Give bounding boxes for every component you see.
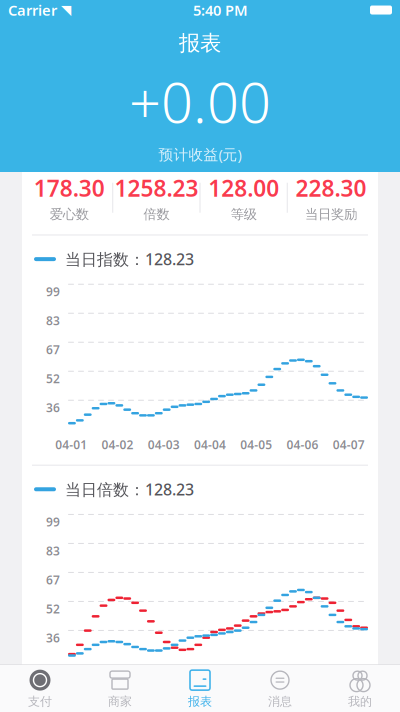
- staticText: 04-05: [240, 437, 272, 453]
- staticText: 支付: [28, 694, 52, 709]
- staticText: 我的: [348, 694, 372, 709]
- staticText: 04-02: [101, 667, 133, 683]
- staticText: 当日倍数：128.23: [65, 479, 194, 500]
- staticText: 52: [46, 601, 60, 617]
- staticText: 36: [46, 400, 60, 416]
- staticText: 228.30: [295, 173, 366, 203]
- button[interactable]: 报表: [160, 663, 240, 712]
- staticText: 商家: [108, 694, 132, 709]
- staticText: 爱心数: [50, 206, 89, 222]
- staticText: 04-07: [333, 667, 365, 683]
- staticText: 当日指数：128.23: [65, 248, 194, 270]
- staticText: 5:40 PM: [193, 0, 248, 20]
- staticText: 04-06: [287, 667, 319, 683]
- button[interactable]: 支付: [0, 663, 80, 712]
- staticText: 04-05: [240, 667, 272, 683]
- button[interactable]: 商家: [80, 663, 160, 712]
- staticText: ◥: [61, 2, 71, 17]
- staticText: 99: [46, 514, 60, 530]
- staticText: Carrier: [8, 0, 57, 20]
- staticText: 04-07: [333, 437, 365, 453]
- staticText: 等级: [231, 206, 257, 222]
- staticText: 67: [46, 342, 60, 358]
- staticText: 消息: [268, 694, 292, 709]
- staticText: 04-04: [194, 437, 226, 453]
- staticText: 04-01: [55, 437, 87, 453]
- staticText: 04-04: [194, 667, 226, 683]
- staticText: 52: [46, 371, 60, 387]
- staticText: 报表: [179, 30, 221, 56]
- staticText: 83: [46, 543, 60, 559]
- staticText: 当日奖励: [305, 206, 357, 222]
- staticText: 128.00: [208, 173, 279, 203]
- staticText: 99: [46, 284, 60, 300]
- staticText: 36: [46, 630, 60, 646]
- staticText: 报表: [188, 694, 212, 709]
- staticText: 倍数: [143, 206, 169, 222]
- staticText: 1258.23: [114, 173, 198, 203]
- staticText: 83: [46, 313, 60, 329]
- button[interactable]: 消息: [240, 663, 320, 712]
- staticText: 预计收益(元): [158, 144, 241, 164]
- staticText: 04-03: [148, 437, 180, 453]
- button[interactable]: 我的: [320, 663, 400, 712]
- staticText: 178.30: [34, 173, 105, 203]
- staticText: +0.00: [129, 64, 271, 139]
- staticText: 67: [46, 572, 60, 588]
- staticText: 04-06: [287, 437, 319, 453]
- staticText: 04-02: [101, 437, 133, 453]
